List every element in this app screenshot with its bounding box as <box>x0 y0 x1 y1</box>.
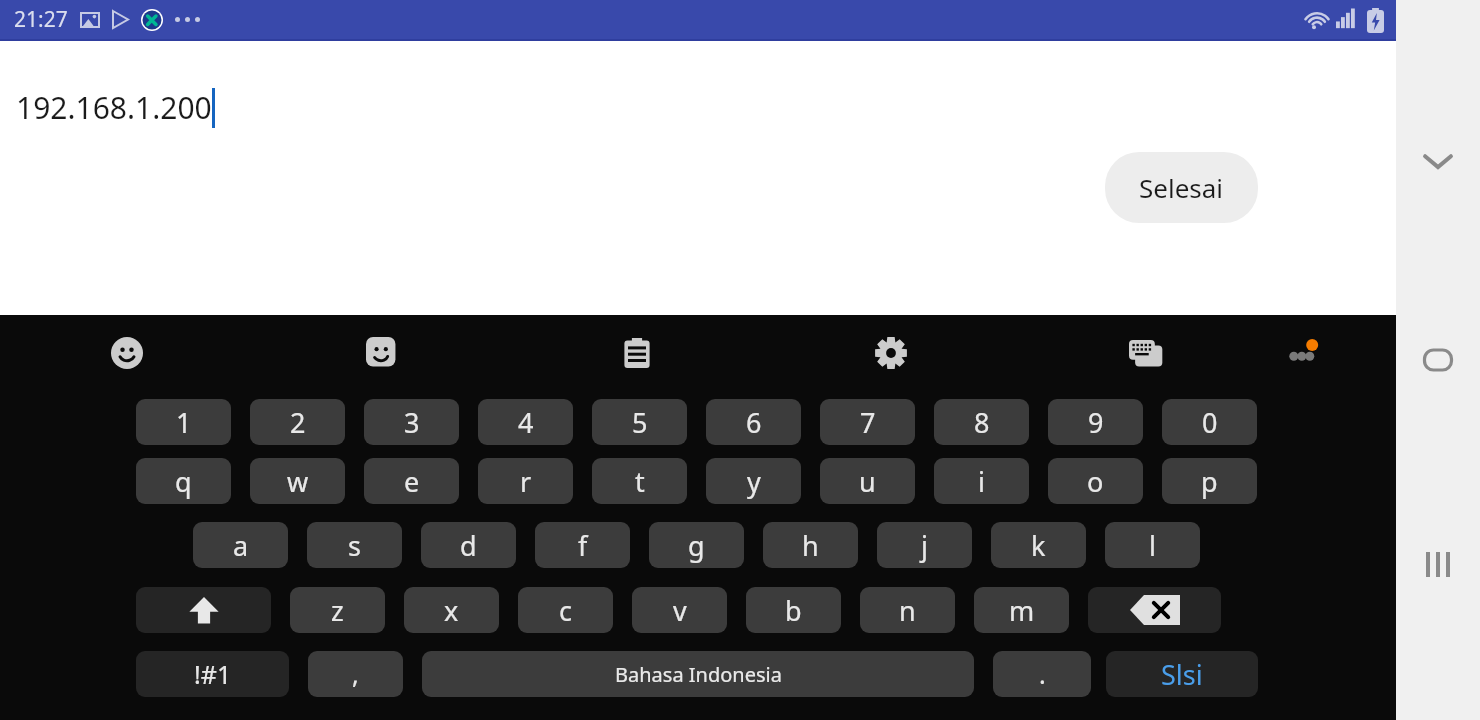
button[interactable]: l <box>1105 522 1200 568</box>
staticText: Bahasa Indonesia <box>615 661 782 688</box>
button[interactable]: n <box>860 587 955 633</box>
staticText: Selesai <box>1139 170 1224 205</box>
staticText: Slsi <box>1161 656 1203 693</box>
button[interactable]: v <box>632 587 727 633</box>
staticText: 5 <box>632 404 648 441</box>
button[interactable]: 9 <box>1048 399 1143 445</box>
button[interactable]: More <box>1278 326 1332 380</box>
staticText: 3 <box>404 404 420 441</box>
button[interactable]: x <box>404 587 499 633</box>
staticText: 192.168.1.200 <box>16 87 212 128</box>
staticText: 2 <box>290 404 306 441</box>
staticText: m <box>1009 592 1035 629</box>
button[interactable]: !#1 <box>136 651 289 697</box>
button[interactable]: g <box>649 522 744 568</box>
staticText: n <box>899 592 916 629</box>
staticText: p <box>1201 463 1218 500</box>
staticText: b <box>785 592 802 629</box>
staticText: . <box>1039 657 1046 691</box>
button[interactable]: z <box>290 587 385 633</box>
button[interactable]: 5 <box>592 399 687 445</box>
staticText: f <box>578 527 588 564</box>
staticText: x <box>444 592 459 629</box>
button[interactable]: Clipboard <box>610 326 664 380</box>
button[interactable]: Recent apps <box>1412 538 1464 590</box>
staticText: c <box>559 592 572 629</box>
staticText: q <box>175 463 192 500</box>
button[interactable]: u <box>820 458 915 504</box>
button[interactable]: Slsi <box>1106 651 1258 697</box>
button[interactable]: b <box>746 587 841 633</box>
staticText: r <box>520 463 532 500</box>
button[interactable]: 6 <box>706 399 801 445</box>
staticText: 1 <box>176 404 192 441</box>
staticText: k <box>1031 527 1046 564</box>
staticText: 4 <box>518 404 534 441</box>
button[interactable]: a <box>193 522 288 568</box>
button[interactable]: . <box>993 651 1091 697</box>
button[interactable]: Backspace <box>1088 587 1221 633</box>
button[interactable]: p <box>1162 458 1257 504</box>
staticText: y <box>747 463 761 500</box>
button[interactable]: Stickers <box>355 326 409 380</box>
staticText: 6 <box>746 404 762 441</box>
button[interactable]: Bahasa Indonesia <box>422 651 974 697</box>
staticText: t <box>635 463 645 500</box>
button[interactable]: Home <box>1412 335 1464 387</box>
button[interactable]: r <box>478 458 573 504</box>
staticText: i <box>978 463 985 500</box>
button[interactable]: k <box>991 522 1086 568</box>
button[interactable]: t <box>592 458 687 504</box>
staticText: v <box>673 592 687 629</box>
staticText: 7 <box>860 404 876 441</box>
button[interactable]: m <box>974 587 1069 633</box>
button[interactable]: 3 <box>364 399 459 445</box>
button[interactable]: y <box>706 458 801 504</box>
staticText: h <box>802 527 819 564</box>
staticText: !#1 <box>194 657 232 691</box>
staticText: d <box>460 527 477 564</box>
button[interactable]: 7 <box>820 399 915 445</box>
button[interactable]: f <box>535 522 630 568</box>
button[interactable]: q <box>136 458 231 504</box>
staticText: s <box>348 527 361 564</box>
staticText: l <box>1149 527 1156 564</box>
button[interactable]: 0 <box>1162 399 1257 445</box>
staticText: e <box>404 463 420 500</box>
button[interactable]: 2 <box>250 399 345 445</box>
button[interactable]: 4 <box>478 399 573 445</box>
button[interactable]: w <box>250 458 345 504</box>
staticText: 21:27 <box>14 5 68 34</box>
staticText: , <box>352 657 359 691</box>
staticText: a <box>233 527 249 564</box>
button[interactable]: h <box>763 522 858 568</box>
button[interactable]: Shift <box>136 587 271 633</box>
button[interactable]: i <box>934 458 1029 504</box>
button[interactable]: Settings <box>864 326 918 380</box>
staticText: 0 <box>1202 404 1218 441</box>
button[interactable]: e <box>364 458 459 504</box>
staticText: u <box>859 463 876 500</box>
staticText: w <box>287 463 309 500</box>
button[interactable]: Selesai <box>1105 152 1258 223</box>
button[interactable]: 1 <box>136 399 231 445</box>
staticText: z <box>331 592 344 629</box>
button[interactable]: , <box>308 651 403 697</box>
button[interactable]: c <box>518 587 613 633</box>
staticText: 9 <box>1088 404 1104 441</box>
staticText: o <box>1087 463 1104 500</box>
button[interactable]: o <box>1048 458 1143 504</box>
button[interactable]: Hide keyboard <box>1412 135 1464 187</box>
button[interactable]: Keyboard layout <box>1119 326 1173 380</box>
button[interactable]: d <box>421 522 516 568</box>
button[interactable]: Emoji <box>100 326 154 380</box>
staticText: j <box>921 527 928 564</box>
button[interactable]: 8 <box>934 399 1029 445</box>
button[interactable]: s <box>307 522 402 568</box>
staticText: g <box>688 527 705 564</box>
button[interactable]: j <box>877 522 972 568</box>
staticText: 8 <box>974 404 990 441</box>
